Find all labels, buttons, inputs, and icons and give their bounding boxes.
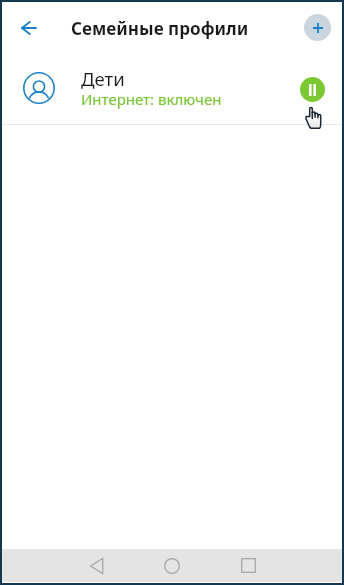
staticText: Семейные профили [71, 17, 249, 40]
button[interactable]: Дети [2, 53, 342, 124]
button[interactable]: Home [148, 549, 196, 582]
button[interactable]: Add profile [304, 14, 331, 41]
button[interactable]: Pause internet [300, 77, 325, 102]
button[interactable]: Back [10, 9, 47, 46]
button[interactable]: Recents [224, 549, 272, 582]
staticText: Интернет: включен [81, 89, 222, 109]
button[interactable]: Back [72, 549, 120, 582]
staticText: Дети [81, 66, 125, 91]
